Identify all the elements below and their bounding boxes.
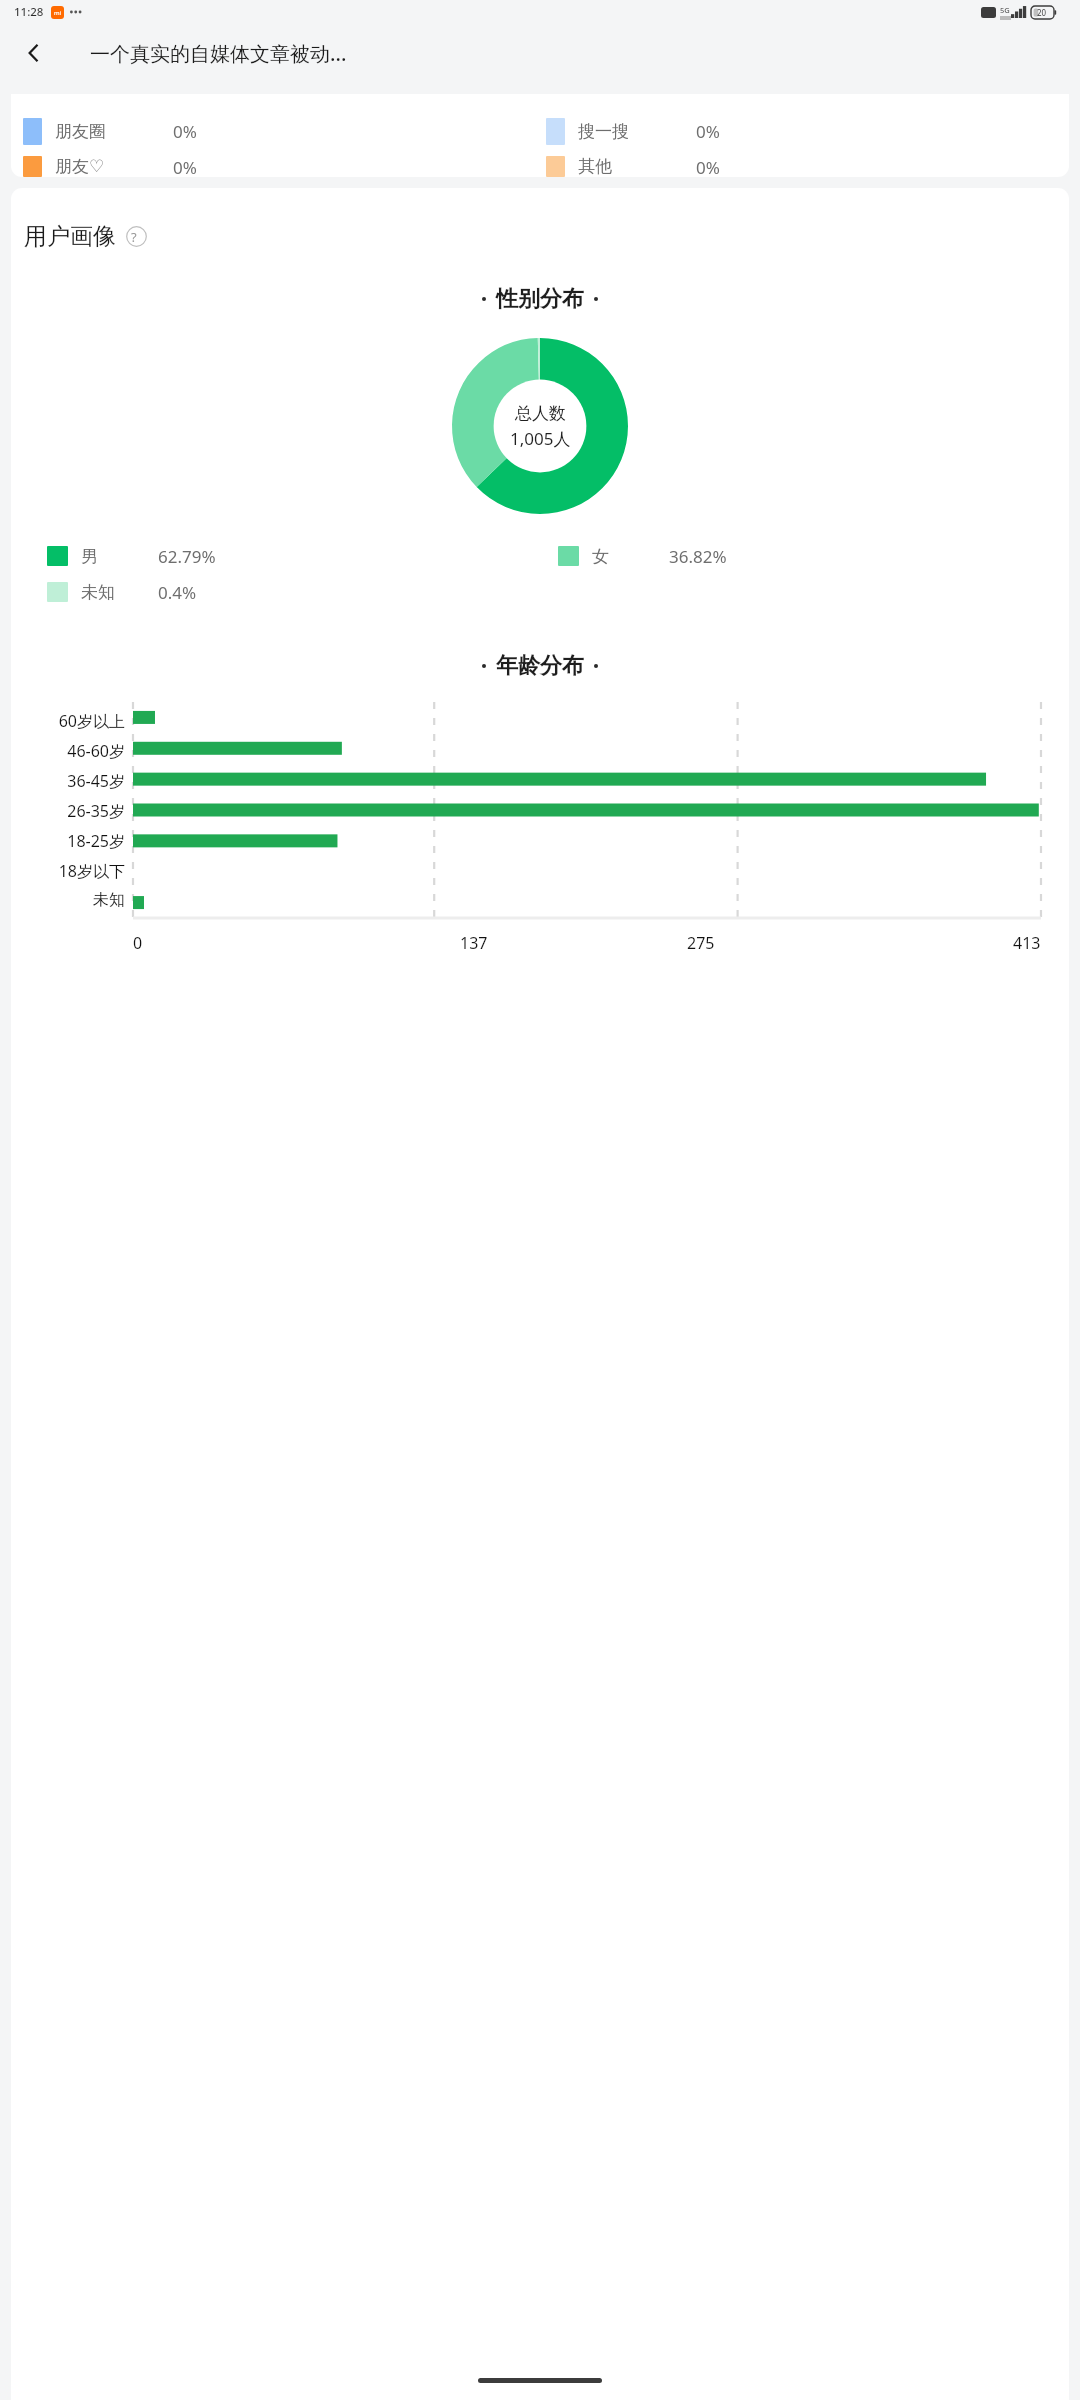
staticText: 总人数 bbox=[515, 403, 566, 424]
staticText: 11:28 bbox=[14, 4, 44, 20]
button[interactable]: Back bbox=[8, 27, 60, 79]
staticText: 46-60岁 bbox=[67, 740, 125, 762]
staticText: 用户画像 bbox=[24, 222, 116, 251]
staticText: 0% bbox=[696, 120, 720, 143]
staticText: 0% bbox=[696, 156, 720, 177]
staticText: 朋友圈 bbox=[55, 121, 173, 142]
staticText: 36-45岁 bbox=[67, 770, 125, 792]
button[interactable]: 搜一搜 bbox=[546, 117, 1069, 145]
staticText: 413 bbox=[1013, 932, 1041, 954]
button[interactable]: 未知 bbox=[47, 579, 558, 605]
staticText: 搜一搜 bbox=[578, 121, 696, 142]
staticText: 男 bbox=[81, 546, 158, 567]
staticText: 62.79% bbox=[158, 545, 216, 568]
button[interactable]: 其他 bbox=[546, 156, 1069, 177]
staticText: 朋友♡ bbox=[55, 156, 173, 177]
staticText: 36.82% bbox=[669, 545, 727, 568]
staticText: 未知 bbox=[93, 890, 125, 910]
staticText: 18-25岁 bbox=[67, 830, 125, 852]
staticText: 女 bbox=[592, 546, 669, 567]
staticText: 0 bbox=[133, 932, 143, 954]
staticText: 26-35岁 bbox=[67, 800, 125, 822]
staticText: 一个真实的自媒体文章被动... bbox=[90, 40, 347, 67]
staticText: 60岁以上 bbox=[58, 710, 125, 732]
staticText: 20 bbox=[1037, 7, 1047, 18]
button[interactable]: 用户画像 bbox=[24, 222, 153, 251]
staticText: 0% bbox=[173, 156, 197, 177]
button[interactable]: 朋友♡ bbox=[23, 156, 546, 177]
staticText: 0% bbox=[173, 120, 197, 143]
staticText: 未知 bbox=[81, 582, 158, 603]
staticText: 其他 bbox=[578, 156, 696, 177]
staticText: ? bbox=[131, 228, 137, 246]
staticText: 1,005人 bbox=[510, 427, 571, 450]
staticText: 18岁以下 bbox=[58, 860, 125, 882]
staticText: 性别分布 bbox=[496, 285, 584, 313]
staticText: 5G bbox=[1000, 5, 1010, 15]
button[interactable]: 女 bbox=[558, 543, 1069, 569]
staticText: 0.4% bbox=[158, 581, 197, 604]
staticText: mi bbox=[54, 9, 62, 17]
staticText: 年龄分布 bbox=[496, 652, 584, 680]
staticText: 137 bbox=[460, 932, 488, 954]
staticText: 275 bbox=[687, 932, 715, 954]
button[interactable]: 男 bbox=[47, 543, 558, 569]
button[interactable]: 朋友圈 bbox=[23, 117, 546, 145]
